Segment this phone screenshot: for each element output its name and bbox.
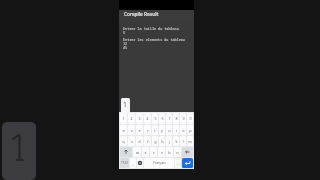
button[interactable]: Français [144,158,174,168]
button[interactable]: ?123 [120,158,129,168]
button[interactable]: w [133,147,141,157]
staticText: 2 [130,116,133,121]
button[interactable]: 3 [136,113,143,124]
button[interactable]: d [136,136,143,146]
button[interactable]: p [187,125,193,135]
button[interactable]: 7 [166,113,172,124]
button[interactable]: , [130,158,136,168]
staticText: z [131,128,133,133]
button[interactable]: Enter [182,158,193,168]
button[interactable]: y [159,125,165,135]
button[interactable]: j [166,136,172,146]
button[interactable]: 2 [128,113,135,124]
staticText: Compile Result [124,11,159,18]
staticText: , [132,161,134,166]
staticText: l [183,139,184,144]
button[interactable]: 4 [144,113,151,124]
button[interactable]: 5 [152,113,158,124]
staticText: i [176,128,177,133]
button[interactable]: Compile Result [119,10,194,21]
staticText: . [177,161,179,166]
staticText: j [169,139,170,144]
staticText: ?123 [121,161,128,165]
staticText: 1 [123,100,128,110]
button[interactable]: q [120,136,127,146]
staticText: w [136,150,139,155]
staticText: 0 [189,116,192,121]
staticText: n [176,150,179,155]
staticText: Entrer les elements du tableau [123,37,185,42]
button[interactable] [2,122,36,180]
staticText: e [138,128,141,133]
staticText: 4 [146,116,149,121]
staticText: 8 [175,116,178,121]
staticText: 7 [168,116,171,121]
button[interactable]: 6 [159,113,165,124]
staticText: 9 [182,116,185,121]
staticText: p [189,128,192,133]
button[interactable]: n [174,147,181,157]
staticText: k [175,139,178,144]
button[interactable]: a [120,125,127,135]
button[interactable]: f [144,136,151,146]
button[interactable]: e [136,125,143,135]
staticText: s [131,139,133,144]
staticText: r [147,128,149,133]
button[interactable]: Shift [120,147,132,157]
staticText: y [161,128,163,133]
staticText: v [161,150,163,155]
button[interactable]: z [128,125,135,135]
button[interactable]: t [152,125,158,135]
button[interactable]: s [128,136,135,146]
staticText: f [147,139,149,144]
button[interactable]: 1 [120,113,127,124]
button[interactable]: h [159,136,165,146]
staticText: o [182,128,185,133]
staticText: h [161,139,164,144]
button[interactable]: o [180,125,186,135]
staticText: b [168,150,171,155]
staticText: a [122,128,125,133]
button[interactable]: k [173,136,179,146]
button[interactable]: l [180,136,186,146]
button[interactable]: m [187,136,193,146]
staticText: d [138,139,141,144]
staticText: u [168,128,171,133]
staticText: 1 [122,116,125,121]
button[interactable]: Emoji [137,158,143,168]
button[interactable]: c [150,147,157,157]
staticText: g [154,139,157,144]
button[interactable]: x [142,147,149,157]
staticText: 45 [123,45,128,50]
staticText: t [154,128,156,133]
button[interactable]: Backspace [182,147,193,157]
button[interactable]: v [158,147,165,157]
button[interactable]: r [144,125,151,135]
staticText: m [188,139,192,144]
button[interactable]: 0 [187,113,193,124]
staticText: 12 [123,41,128,46]
staticText: q [122,139,125,144]
staticText: 3 [138,116,141,121]
staticText: 5 [154,116,157,121]
button[interactable]: u [166,125,172,135]
staticText: 5 [123,30,126,35]
button[interactable]: 9 [180,113,186,124]
button[interactable]: 8 [173,113,179,124]
staticText: c [153,150,155,155]
staticText: Entrer la taille du tableau [123,26,179,31]
staticText: 6 [161,116,164,121]
staticText: x [144,150,147,155]
button[interactable]: g [152,136,158,146]
button[interactable]: . [175,158,181,168]
button[interactable]: i [173,125,179,135]
staticText: Français [153,161,166,165]
button[interactable]: b [166,147,173,157]
